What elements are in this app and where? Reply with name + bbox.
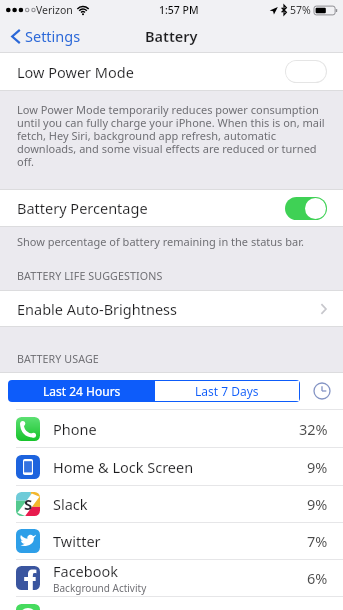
button[interactable]: Last 7 Days bbox=[155, 381, 299, 401]
staticText: Battery Percentage bbox=[17, 198, 148, 218]
staticText: S bbox=[24, 494, 33, 514]
staticText: Low Power Mode bbox=[17, 62, 134, 82]
staticText: 7% bbox=[307, 531, 328, 551]
staticText: Last 24 Hours bbox=[43, 383, 121, 399]
staticText: Facebook bbox=[53, 561, 119, 581]
staticText: Twitter bbox=[53, 531, 101, 551]
staticText: BATTERY LIFE SUGGESTIONS bbox=[17, 269, 163, 284]
staticText: Slack bbox=[53, 494, 88, 514]
staticText: Enable Auto-Brightness bbox=[17, 299, 177, 319]
button[interactable]: Off bbox=[285, 60, 327, 83]
staticText: 9% bbox=[307, 494, 328, 514]
button[interactable]: Show usage by time bbox=[310, 379, 334, 403]
button[interactable]: Twitter bbox=[0, 523, 343, 559]
button[interactable]: Facebook bbox=[0, 560, 343, 596]
staticText: Last 7 Days bbox=[195, 383, 259, 399]
staticText: 6% bbox=[307, 568, 328, 588]
staticText: 9% bbox=[307, 457, 328, 477]
staticText: 57% bbox=[290, 3, 311, 17]
button[interactable]: Phone bbox=[0, 410, 343, 447]
staticText: Home & Lock Screen bbox=[53, 457, 194, 477]
staticText: Settings bbox=[25, 26, 81, 46]
button[interactable]: On bbox=[285, 197, 327, 220]
button[interactable]: Messages bbox=[0, 597, 343, 610]
staticText: Verizon bbox=[36, 3, 73, 17]
staticText: Low Power Mode temporarily reduces power… bbox=[17, 102, 332, 170]
staticText: Background Activity bbox=[53, 581, 147, 595]
button[interactable]: Home & Lock Screen bbox=[0, 448, 343, 485]
staticText: Phone bbox=[53, 419, 97, 439]
staticText: BATTERY USAGE bbox=[17, 352, 99, 367]
button[interactable]: Last 24 Hours bbox=[8, 380, 155, 402]
staticText: Show percentage of battery remaining in … bbox=[17, 234, 304, 249]
button[interactable]: Settings bbox=[11, 20, 81, 52]
staticText: Battery bbox=[145, 26, 198, 46]
staticText: 32% bbox=[299, 419, 328, 439]
button[interactable]: S bbox=[0, 486, 343, 522]
button[interactable]: Enable Auto-Brightness bbox=[0, 291, 343, 326]
staticText: 1:57 PM bbox=[159, 3, 199, 17]
